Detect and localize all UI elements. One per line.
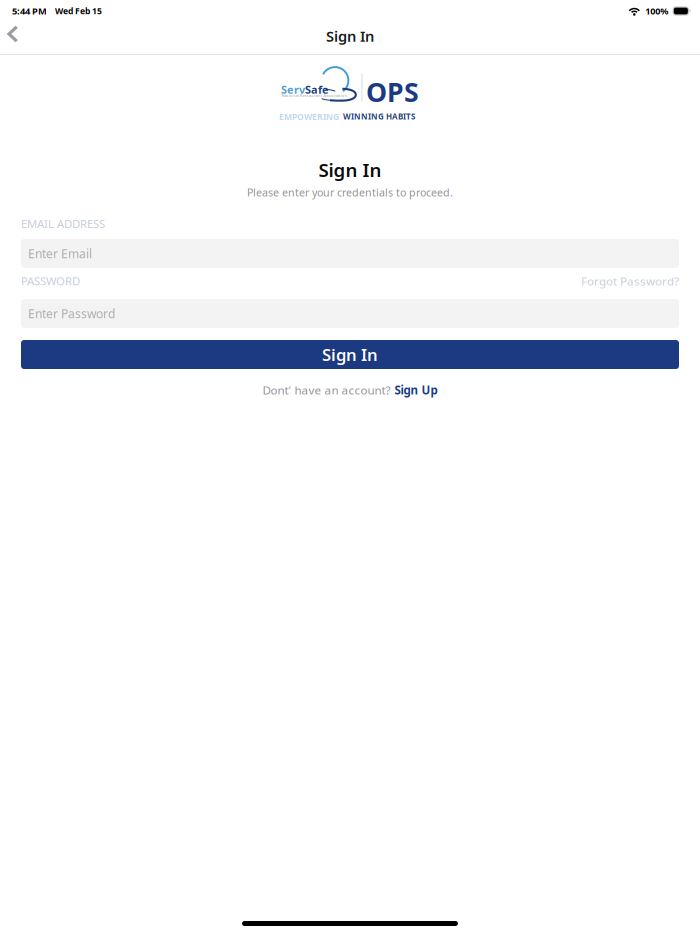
staticText: 5:44 PM (12, 5, 47, 17)
button[interactable]: Sign In (21, 340, 679, 369)
staticText: Enter Email (28, 245, 92, 262)
staticText: 100% (645, 5, 668, 17)
staticText: PASSWORD (21, 273, 80, 289)
staticText: EMPOWERING (279, 111, 339, 123)
button[interactable]: Back (5, 19, 33, 49)
staticText: Dont' have an account? (262, 382, 390, 398)
staticText: Enter Password (28, 305, 115, 322)
button[interactable]: Forgot Password? (581, 273, 679, 289)
staticText: National Restaurant Association (281, 92, 347, 98)
staticText: Sign Up (394, 382, 437, 398)
staticText: Please enter your credentials to proceed… (247, 185, 453, 199)
staticText: WINNING HABITS (343, 111, 415, 122)
staticText: OPS (366, 73, 419, 110)
staticText: Forgot Password? (581, 273, 679, 289)
staticText: Sign In (318, 157, 381, 182)
staticText: Safe (305, 82, 329, 97)
staticText: Sign In (326, 26, 374, 46)
staticText: EMAIL ADDRESS (21, 216, 105, 231)
staticText: Serv (281, 82, 305, 97)
staticText: Sign In (322, 343, 378, 366)
button[interactable]: Sign Up (394, 382, 437, 398)
staticText: Wed Feb 15 (55, 5, 102, 17)
